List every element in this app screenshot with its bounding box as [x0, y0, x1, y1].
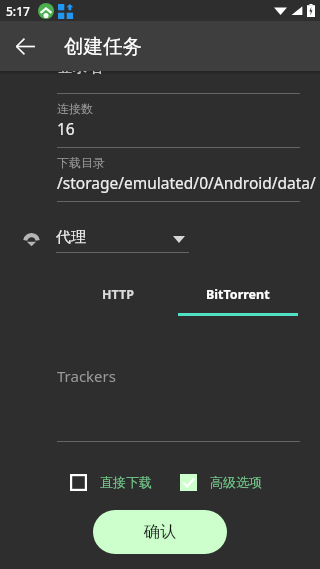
staticText: /storage/emulated/0/Android/data/ — [57, 172, 316, 193]
staticText: 确认 — [144, 522, 176, 542]
staticText: 创建任务 — [64, 34, 142, 59]
button[interactable]: Back — [9, 30, 41, 62]
staticText: BitTorrent — [206, 286, 270, 303]
staticText: 5:17 — [6, 3, 30, 19]
staticText: 连接数 — [57, 101, 93, 116]
button[interactable]: HTTP — [58, 276, 178, 312]
button[interactable]: 高级选项 — [180, 467, 262, 497]
staticText: 直接下载 — [100, 474, 152, 490]
staticText: 登录名 — [57, 57, 104, 77]
staticText: 下载目录 — [57, 155, 105, 170]
staticText: 高级选项 — [210, 474, 262, 490]
staticText: 代理 — [56, 228, 86, 247]
staticText: Trackers — [57, 366, 116, 386]
button[interactable]: 确认 — [93, 510, 227, 554]
button[interactable]: 代理 — [0, 215, 320, 265]
staticText: 16 — [57, 118, 75, 139]
button[interactable]: 直接下载 — [70, 467, 152, 497]
staticText: HTTP — [102, 286, 135, 303]
button[interactable]: BitTorrent — [178, 276, 298, 312]
